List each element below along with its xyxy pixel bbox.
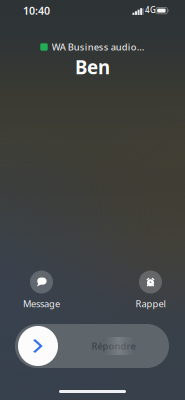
- staticText: Rappel: [135, 297, 165, 310]
- button[interactable]: Répondre: [15, 324, 169, 368]
- staticText: WA Business audio…: [52, 41, 145, 53]
- staticText: Répondre: [91, 340, 135, 352]
- staticText: 4G: [145, 4, 156, 15]
- staticText: 10:40: [23, 3, 50, 18]
- staticText: Message: [23, 297, 60, 310]
- button[interactable]: Rappel: [118, 270, 182, 304]
- staticText: Ben: [75, 55, 110, 79]
- button[interactable]: Message: [9, 270, 73, 304]
